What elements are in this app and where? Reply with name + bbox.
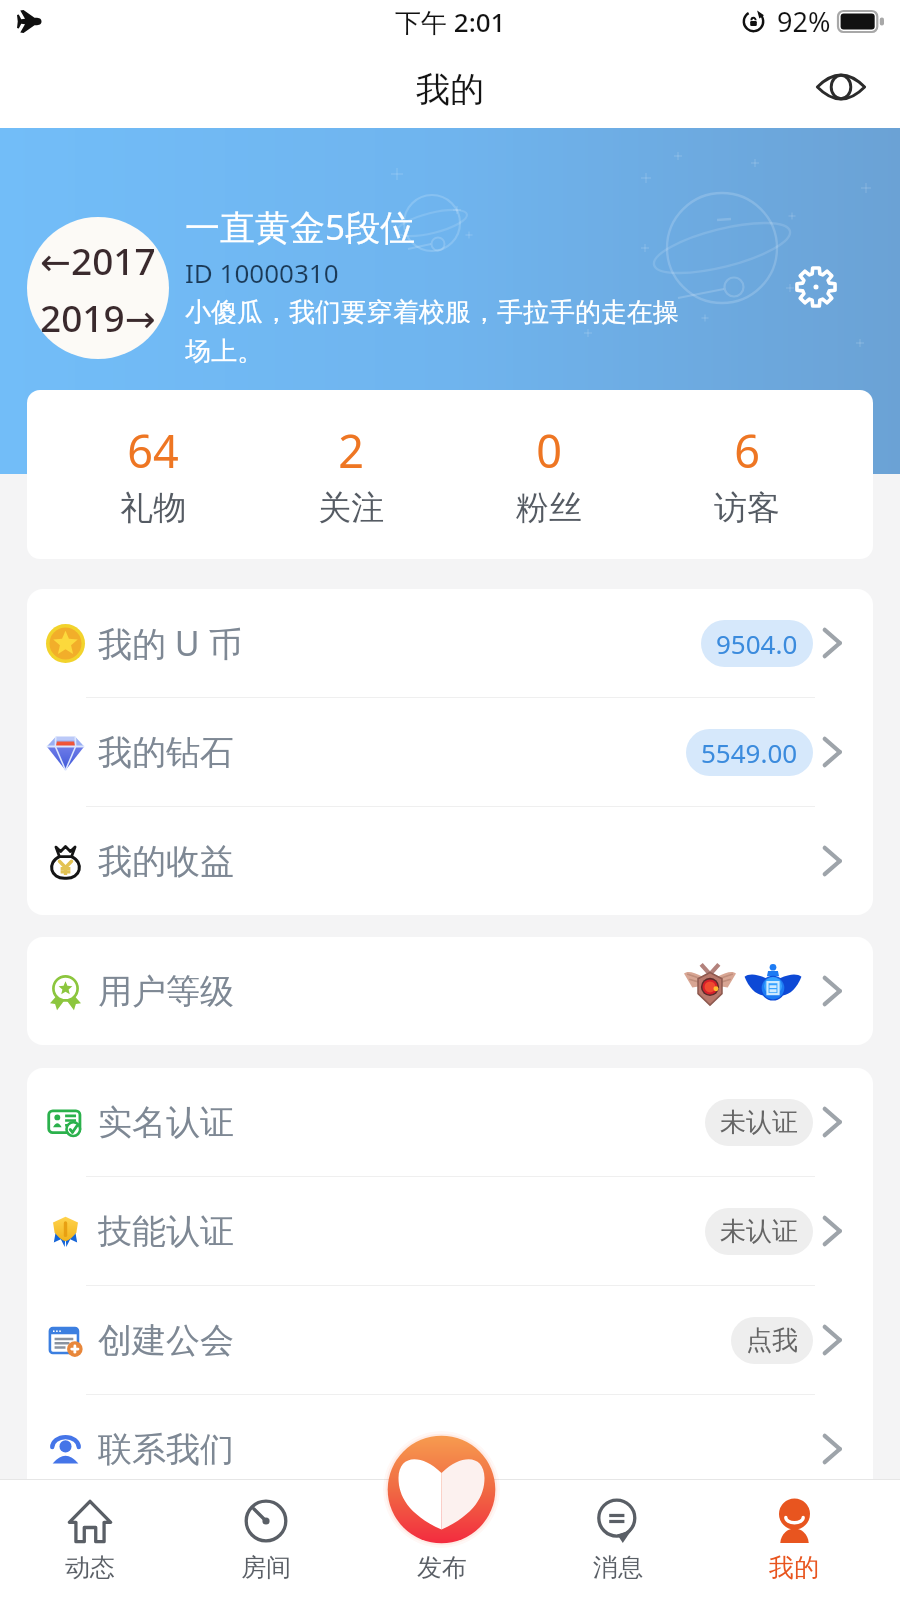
- staticText: 我的 U 币: [98, 620, 243, 666]
- button[interactable]: Settings: [789, 260, 843, 314]
- staticText: 我的: [416, 68, 484, 111]
- button[interactable]: 6: [648, 414, 846, 535]
- button[interactable]: 我的钻石: [27, 698, 873, 806]
- button[interactable]: 我的 U 币: [27, 589, 873, 697]
- staticText: 9504.0: [716, 626, 798, 661]
- staticText: 2: [338, 420, 364, 481]
- staticText: 小傻瓜，我们要穿着校服，手拉手的走在操场上。: [185, 296, 687, 368]
- staticText: 技能认证: [98, 1210, 234, 1253]
- staticText: 粉丝: [516, 487, 582, 529]
- staticText: 一直黄金5段位: [185, 203, 416, 251]
- staticText: 点我: [746, 1324, 798, 1357]
- staticText: 访客: [714, 487, 780, 529]
- button[interactable]: 发布: [354, 1479, 530, 1600]
- button[interactable]: 64: [54, 414, 252, 535]
- button[interactable]: 联系我们: [27, 1395, 873, 1503]
- staticText: ←2017: [40, 235, 156, 285]
- staticText: 用户等级: [98, 970, 234, 1013]
- button[interactable]: Avatar: [27, 217, 169, 359]
- button[interactable]: 2: [252, 414, 450, 535]
- staticText: 下午 2:01: [395, 4, 506, 40]
- staticText: 礼物: [120, 487, 186, 529]
- staticText: 创建公会: [98, 1319, 234, 1362]
- staticText: 消息: [593, 1552, 643, 1583]
- button[interactable]: 房间: [178, 1479, 354, 1600]
- button[interactable]: 用户等级: [27, 937, 873, 1045]
- staticText: 实名认证: [98, 1101, 234, 1144]
- button[interactable]: 实名认证: [27, 1068, 873, 1176]
- button[interactable]: 动态: [1, 1479, 178, 1600]
- staticText: 我的钻石: [98, 731, 234, 774]
- button[interactable]: 0: [450, 414, 648, 535]
- staticText: 64: [127, 420, 179, 481]
- staticText: 房间: [241, 1552, 291, 1583]
- button[interactable]: Preview visitors: [813, 59, 869, 115]
- staticText: 92%: [777, 3, 831, 40]
- button[interactable]: 创建公会: [27, 1286, 873, 1394]
- staticText: 联系我们: [98, 1428, 234, 1471]
- staticText: 我的收益: [98, 840, 234, 883]
- staticText: 5549.00: [701, 735, 798, 770]
- button[interactable]: 消息: [530, 1479, 706, 1600]
- staticText: 2019→: [40, 292, 156, 342]
- staticText: 0: [536, 420, 562, 481]
- staticText: 关注: [318, 487, 384, 529]
- button[interactable]: Publish: [383, 1431, 500, 1548]
- staticText: ID 10000310: [185, 255, 339, 290]
- button[interactable]: 技能认证: [27, 1177, 873, 1285]
- button[interactable]: 我的: [706, 1479, 882, 1600]
- staticText: 我的: [769, 1552, 819, 1583]
- staticText: 6: [734, 420, 760, 481]
- staticText: 发布: [417, 1552, 467, 1583]
- staticText: 动态: [65, 1552, 115, 1583]
- staticText: 未认证: [720, 1215, 798, 1248]
- button[interactable]: 我的收益: [27, 807, 873, 915]
- staticText: 未认证: [720, 1106, 798, 1139]
